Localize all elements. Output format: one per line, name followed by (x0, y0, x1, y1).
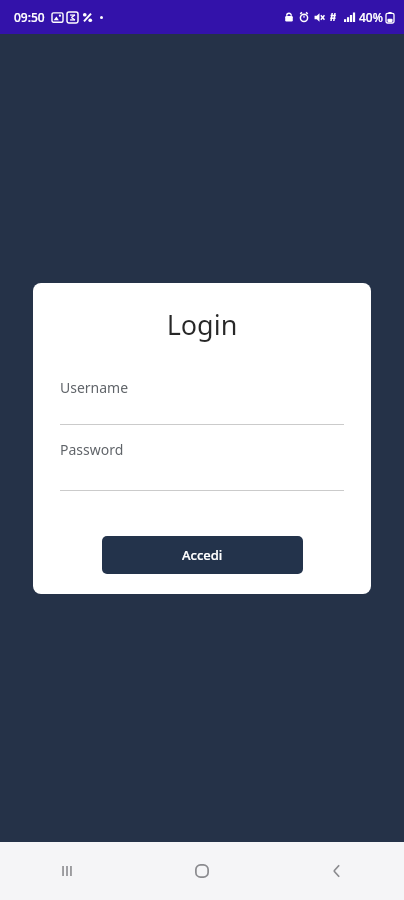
button[interactable]: Home (134, 842, 269, 900)
button[interactable]: Accedi (102, 536, 303, 574)
button[interactable]: Recent apps (0, 842, 134, 900)
button[interactable]: Username (33, 370, 371, 425)
staticText: Login (33, 306, 371, 343)
button[interactable]: Password (33, 433, 371, 491)
staticText: Username (60, 378, 129, 397)
staticText: 09:50 (14, 9, 45, 25)
staticText: Accedi (182, 546, 223, 564)
staticText: Password (60, 440, 124, 459)
button[interactable]: Back (269, 842, 404, 900)
staticText: 40% (359, 9, 383, 25)
